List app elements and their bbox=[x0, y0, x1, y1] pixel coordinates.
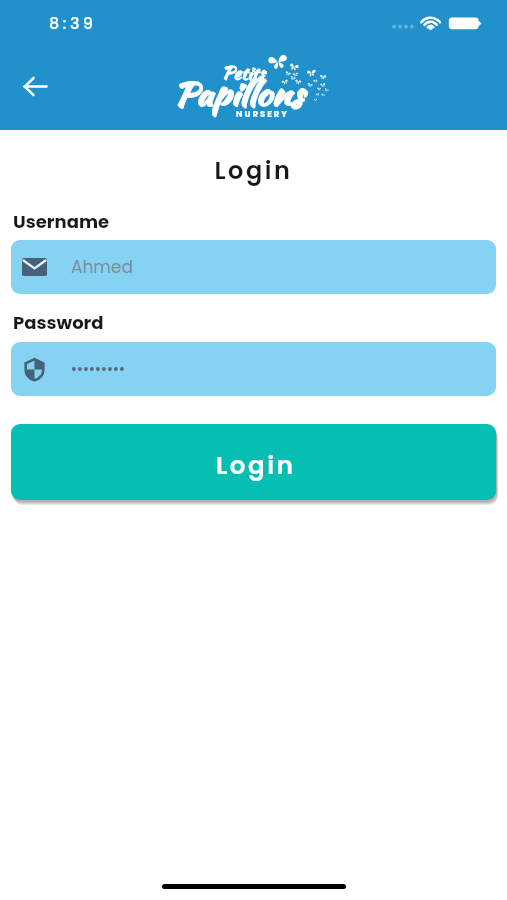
staticText: Login bbox=[216, 448, 296, 482]
button[interactable]: Ahmed bbox=[11, 240, 496, 294]
staticText: Papillons bbox=[174, 70, 304, 116]
staticText: Ahmed bbox=[71, 255, 133, 279]
staticText: Username bbox=[13, 209, 110, 234]
staticText: Petits bbox=[222, 62, 265, 85]
button[interactable]: Back bbox=[13, 66, 58, 111]
staticText: Password bbox=[13, 310, 104, 335]
staticText: Petits bbox=[222, 62, 265, 85]
staticText: 8:39 bbox=[49, 12, 97, 34]
staticText: Login bbox=[0, 154, 507, 188]
button[interactable]: Login bbox=[11, 424, 496, 500]
staticText: Papillons bbox=[174, 70, 304, 116]
staticText: NURSERY bbox=[236, 108, 289, 120]
button[interactable] bbox=[11, 342, 496, 396]
